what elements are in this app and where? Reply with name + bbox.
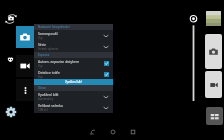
staticText: Detekce tváře [38,70,60,75]
button[interactable]: Autom. expozice dotykem [34,58,113,69]
button[interactable]: Record video [205,71,222,98]
button[interactable]: Zoom [189,13,198,101]
button[interactable]: Detekce tváře [34,69,113,79]
button[interactable]: Video mode [16,55,34,77]
staticText: Autom. expozice dotykem [38,59,80,64]
staticText: Vyp [38,75,43,79]
staticText: Velikost snímku [38,103,63,108]
staticText: Nastavení fotografování [38,25,70,29]
button[interactable]: Vyvážení bílé [34,91,113,102]
button[interactable]: More modes [16,79,34,101]
button[interactable]: Recents [128,127,138,137]
button[interactable]: Gallery [206,11,221,26]
button[interactable]: Switch camera [4,12,18,26]
button[interactable]: Vyvážení bílé [34,79,113,85]
button[interactable]: Série [34,41,113,52]
staticText: Vyvážení bílé [65,80,82,84]
button[interactable]: Settings [5,106,17,118]
button[interactable]: Take photo [205,34,222,69]
staticText: Vyvážení bílé [38,92,59,97]
button[interactable]: Velikost snímku [34,102,113,113]
staticText: Samospoušť [38,31,58,36]
staticText: Obraz [38,86,46,90]
staticText: Vyp [38,64,43,68]
button[interactable]: Home [108,127,118,137]
button[interactable]: Back [88,127,98,137]
staticText: Expozice [38,53,50,57]
staticText: 13M 4:3 [38,108,48,112]
staticText: Snímek vyberete [38,47,59,51]
button[interactable]: Flash mode [5,53,16,64]
staticText: Série [38,42,46,47]
staticText: Vyp [38,36,43,40]
staticText: Automaticky [38,97,54,101]
button[interactable]: Photo mode [16,26,34,48]
button[interactable]: Grid [206,107,223,125]
button[interactable]: Samospoušť [34,30,113,41]
